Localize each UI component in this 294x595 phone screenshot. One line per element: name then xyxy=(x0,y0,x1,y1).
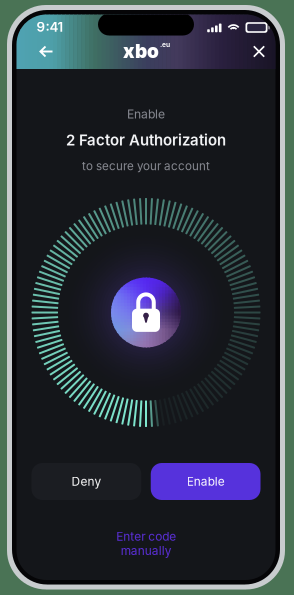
staticText: 2 Factor Authorization xyxy=(66,131,226,149)
staticText: to secure your account xyxy=(82,159,210,173)
staticText: xbo xyxy=(123,39,159,62)
button[interactable]: Enable xyxy=(151,463,261,500)
staticText: .eu xyxy=(160,40,170,49)
button[interactable]: Deny xyxy=(31,463,141,500)
staticText: Enable xyxy=(127,107,165,121)
button[interactable]: Enter code manually xyxy=(114,529,178,558)
staticText: 9:41 xyxy=(36,19,63,35)
staticText: Deny xyxy=(71,474,101,489)
button[interactable]: Back xyxy=(29,34,63,68)
button[interactable]: Close xyxy=(242,34,276,68)
staticText: Enter code manually xyxy=(116,529,176,558)
staticText: Enable xyxy=(187,474,225,489)
